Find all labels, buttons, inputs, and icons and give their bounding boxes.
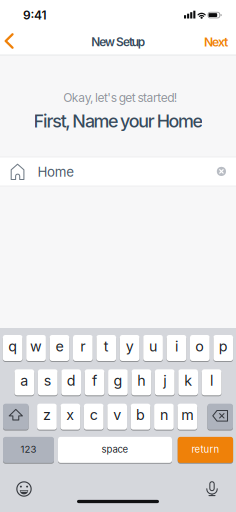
staticText: a	[20, 372, 28, 389]
button[interactable]: t	[96, 335, 116, 361]
staticText: s	[44, 372, 52, 389]
staticText: w	[30, 338, 42, 355]
button[interactable]	[3, 404, 29, 430]
staticText: k	[184, 372, 192, 389]
staticText: n	[160, 406, 168, 424]
staticText: r	[80, 338, 85, 355]
button[interactable]: Next	[196, 28, 236, 55]
staticText: d	[67, 372, 76, 389]
staticText: 123	[20, 443, 36, 455]
staticText: Next	[204, 35, 228, 49]
staticText: 9:41	[23, 8, 46, 22]
button[interactable]: u	[143, 335, 163, 361]
button[interactable]: g	[108, 369, 128, 395]
button[interactable]: k	[178, 369, 198, 395]
button[interactable]	[207, 404, 233, 430]
staticText: q	[8, 338, 17, 355]
button[interactable]	[205, 480, 219, 498]
staticText: x	[66, 406, 74, 424]
button[interactable]	[0, 28, 22, 55]
button[interactable]: r	[73, 335, 93, 361]
staticText: f	[92, 372, 97, 389]
staticText: m	[181, 406, 193, 424]
button[interactable]: w	[26, 335, 46, 361]
staticText: h	[137, 372, 145, 389]
staticText: g	[113, 372, 122, 389]
staticText: space	[101, 443, 128, 455]
button[interactable]: return	[178, 437, 233, 463]
button[interactable]: e	[50, 335, 69, 361]
staticText: l	[210, 372, 213, 389]
button[interactable]: 123	[3, 437, 54, 463]
staticText: New Setup	[91, 35, 145, 49]
staticText: y	[126, 338, 134, 355]
staticText: o	[195, 338, 204, 355]
button[interactable]: s	[38, 369, 58, 395]
staticText: u	[149, 338, 157, 355]
button[interactable]: i	[167, 335, 186, 361]
button[interactable]: f	[85, 369, 104, 395]
staticText: Okay, let's get started!	[63, 90, 177, 105]
button[interactable]	[15, 480, 33, 498]
button[interactable]: b	[131, 404, 150, 430]
button[interactable]: c	[84, 404, 104, 430]
button[interactable]	[0, 157, 236, 186]
staticText: z	[43, 406, 51, 424]
staticText: Home	[37, 164, 74, 180]
staticText: t	[104, 338, 109, 355]
staticText: c	[90, 406, 98, 424]
button[interactable]: o	[190, 335, 210, 361]
button[interactable]: p	[213, 335, 233, 361]
button[interactable]: l	[202, 369, 221, 395]
staticText: j	[163, 372, 166, 389]
button[interactable]	[213, 163, 229, 179]
button[interactable]: q	[3, 335, 22, 361]
staticText: p	[219, 338, 228, 355]
staticText: i	[175, 338, 178, 355]
button[interactable]: a	[14, 369, 34, 395]
button[interactable]: d	[61, 369, 81, 395]
button[interactable]: y	[120, 335, 139, 361]
button[interactable]: m	[177, 404, 197, 430]
button[interactable]: x	[60, 404, 80, 430]
button[interactable]: z	[37, 404, 57, 430]
button[interactable]: v	[107, 404, 127, 430]
staticText: First, Name your Home	[33, 110, 202, 132]
staticText: v	[113, 406, 121, 424]
button[interactable]: h	[131, 369, 151, 395]
staticText: return	[191, 443, 219, 455]
button[interactable]: space	[58, 437, 172, 463]
staticText: e	[55, 338, 63, 355]
staticText: b	[136, 406, 145, 424]
button[interactable]: j	[155, 369, 175, 395]
button[interactable]: n	[154, 404, 174, 430]
